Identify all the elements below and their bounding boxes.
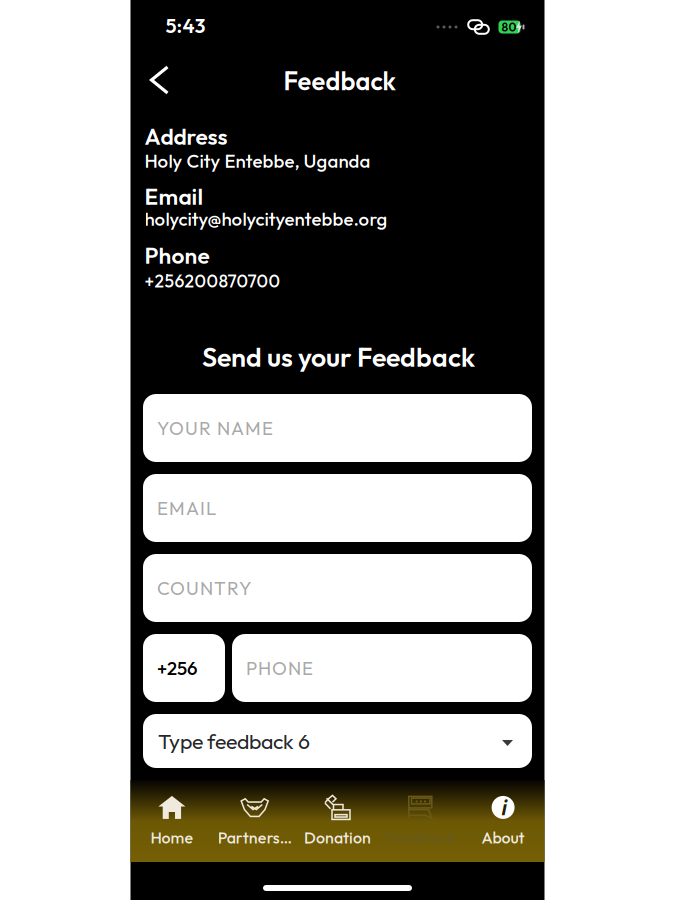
button[interactable]: Home	[130, 780, 213, 862]
button[interactable]: YOUR NAME	[143, 394, 532, 462]
staticText: Phone	[144, 241, 209, 270]
staticText: Feedback	[283, 65, 395, 97]
button[interactable]: Back	[138, 54, 180, 106]
button[interactable]: EMAIL	[143, 474, 532, 542]
button[interactable]: PHONE	[232, 634, 532, 702]
staticText: 5:43	[165, 13, 205, 38]
staticText: About	[482, 827, 525, 848]
staticText: YOUR NAME	[157, 416, 273, 440]
staticText: Send us your Feedback	[202, 340, 475, 374]
staticText: +256200870700	[144, 270, 280, 292]
staticText: +256	[157, 656, 197, 680]
staticText: Holy City Entebbe, Uganda	[144, 149, 370, 172]
staticText: Address	[144, 122, 227, 151]
staticText: 80	[501, 19, 516, 34]
staticText: Partners…	[218, 827, 292, 848]
staticText: i	[501, 794, 506, 821]
button[interactable]: +256	[143, 634, 225, 702]
staticText: EMAIL	[157, 496, 216, 520]
staticText: Home	[150, 827, 193, 848]
staticText: Type feedback 6	[158, 728, 310, 754]
button[interactable]: Partners…	[213, 780, 296, 862]
button[interactable]: i	[462, 780, 544, 862]
button[interactable]: COUNTRY	[143, 554, 532, 622]
staticText: Email	[144, 182, 203, 211]
staticText: Feedback	[385, 827, 455, 848]
staticText: COUNTRY	[157, 576, 251, 600]
staticText: holycity@holycityentebbe.org	[144, 207, 387, 230]
button[interactable]: Type feedback 6	[143, 714, 532, 768]
button[interactable]: Feedback	[379, 780, 462, 862]
button[interactable]: Donation	[296, 780, 379, 862]
staticText: PHONE	[246, 656, 313, 680]
staticText: Donation	[304, 827, 371, 848]
